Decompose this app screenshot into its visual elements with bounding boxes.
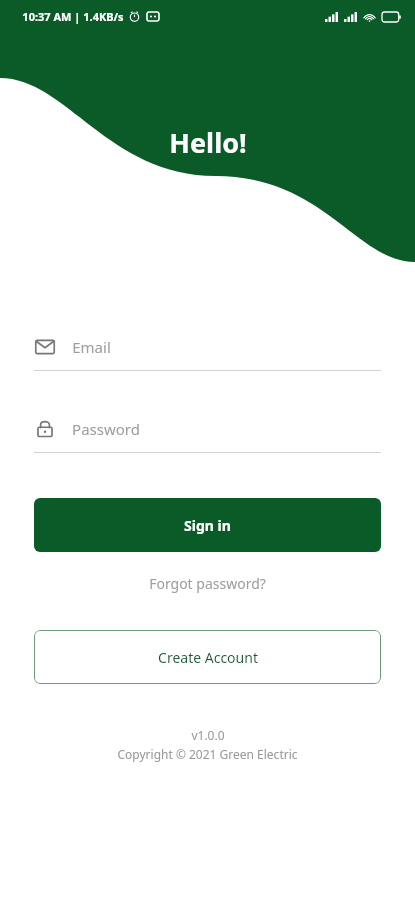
staticText: Hello! xyxy=(169,124,247,161)
staticText: Email xyxy=(72,337,111,357)
button[interactable]: Password xyxy=(34,412,381,446)
staticText: 10:37 AM | 1.4KB/s xyxy=(22,9,124,24)
button[interactable]: Email xyxy=(34,330,381,364)
staticText: v1.0.0 xyxy=(191,727,225,743)
button[interactable]: Forgot password? xyxy=(34,574,381,593)
staticText: Password xyxy=(72,419,140,439)
staticText: Forgot password? xyxy=(149,574,266,593)
button[interactable]: Create Account xyxy=(34,630,381,684)
button[interactable]: Sign in xyxy=(34,498,381,552)
staticText: Create Account xyxy=(158,648,258,667)
staticText: Sign in xyxy=(184,516,231,535)
staticText: Copyright © 2021 Green Electric xyxy=(117,746,298,762)
